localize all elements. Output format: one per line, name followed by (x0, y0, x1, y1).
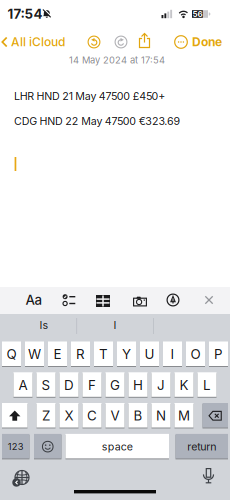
staticText: L (203, 377, 211, 393)
button[interactable]: Return (175, 434, 228, 459)
button[interactable]: Share (138, 32, 150, 48)
staticText: Y (122, 346, 131, 362)
button[interactable]: J (151, 372, 170, 398)
button[interactable]: B (128, 403, 147, 428)
button[interactable]: P (209, 341, 228, 367)
button[interactable]: M (174, 403, 193, 428)
staticText: F (88, 377, 96, 393)
button[interactable]: A (13, 372, 32, 398)
staticText: 14 May 2024 at 17:54 (69, 54, 165, 65)
button[interactable]: I (163, 341, 182, 367)
staticText: U (144, 346, 154, 362)
button[interactable]: Markup (166, 293, 179, 306)
button[interactable]: Done (192, 35, 222, 49)
staticText: V (110, 408, 119, 424)
staticText: W (28, 346, 41, 362)
button[interactable]: H (128, 372, 147, 398)
button[interactable]: Dictation (202, 468, 214, 485)
staticText: A (18, 377, 27, 393)
staticText: Aa (25, 292, 42, 308)
button[interactable]: N (151, 403, 170, 428)
staticText: N (156, 408, 166, 424)
button[interactable]: L (197, 372, 216, 398)
button[interactable]: F (82, 372, 101, 398)
staticText: O (190, 346, 200, 362)
button[interactable]: Next keyboard (14, 469, 30, 485)
button[interactable]: G (105, 372, 124, 398)
staticText: return (187, 440, 216, 453)
button[interactable]: Numbers (2, 434, 29, 459)
staticText: X (64, 408, 73, 424)
staticText: S (41, 377, 50, 393)
staticText: I (113, 319, 116, 331)
button[interactable]: S (36, 372, 55, 398)
staticText: All iCloud (11, 35, 65, 49)
button[interactable]: Checklist (62, 293, 75, 306)
staticText: LHR HND 21 May 47500 £450+ (14, 90, 165, 102)
staticText: K (179, 377, 188, 393)
button[interactable]: E (48, 341, 67, 367)
staticText: D (64, 377, 74, 393)
button[interactable]: Undo (87, 35, 100, 48)
staticText: Q (6, 346, 16, 362)
staticText: T (99, 346, 108, 362)
staticText: H (133, 377, 143, 393)
button[interactable]: K (174, 372, 193, 398)
staticText: Z (42, 408, 50, 424)
staticText: E (53, 346, 61, 362)
staticText: Done (192, 35, 222, 49)
button[interactable]: Is (14, 315, 74, 335)
staticText: C (87, 408, 97, 424)
button[interactable]: T (94, 341, 113, 367)
button[interactable]: Delete (202, 403, 228, 428)
staticText: B (133, 408, 142, 424)
staticText: R (76, 346, 85, 362)
staticText: I (170, 346, 174, 362)
button[interactable]: Camera (133, 295, 147, 306)
button[interactable]: More (174, 35, 188, 49)
button[interactable]: Space (65, 434, 169, 459)
staticText: 123 (8, 441, 24, 452)
button[interactable]: Z (36, 403, 55, 428)
button[interactable]: Emoji (34, 434, 61, 459)
staticText: 56 (192, 9, 202, 19)
button[interactable]: All iCloud (1, 35, 65, 49)
button[interactable]: X (59, 403, 78, 428)
button[interactable]: Table (96, 295, 110, 307)
button[interactable]: O (186, 341, 205, 367)
button[interactable]: W (25, 341, 44, 367)
button[interactable]: C (82, 403, 101, 428)
button[interactable]: Q (2, 341, 21, 367)
button[interactable]: U (140, 341, 159, 367)
staticText: J (157, 377, 165, 393)
staticText: 17:54 (7, 6, 42, 22)
staticText: CDG HND 22 May 47500 €323.69 (14, 115, 181, 127)
staticText: P (214, 346, 223, 362)
staticText: Is (39, 319, 48, 331)
button[interactable]: V (105, 403, 124, 428)
staticText: M (178, 408, 190, 424)
button[interactable]: Formatting (25, 292, 42, 308)
staticText: space (102, 440, 133, 453)
staticText: G (110, 377, 120, 393)
button[interactable]: Redo (114, 35, 127, 48)
button[interactable]: Shift (2, 403, 27, 428)
button[interactable]: D (59, 372, 78, 398)
button[interactable]: Y (117, 341, 136, 367)
button[interactable]: Dismiss keyboard (204, 295, 213, 304)
button[interactable]: I (85, 315, 145, 335)
button[interactable]: R (71, 341, 90, 367)
